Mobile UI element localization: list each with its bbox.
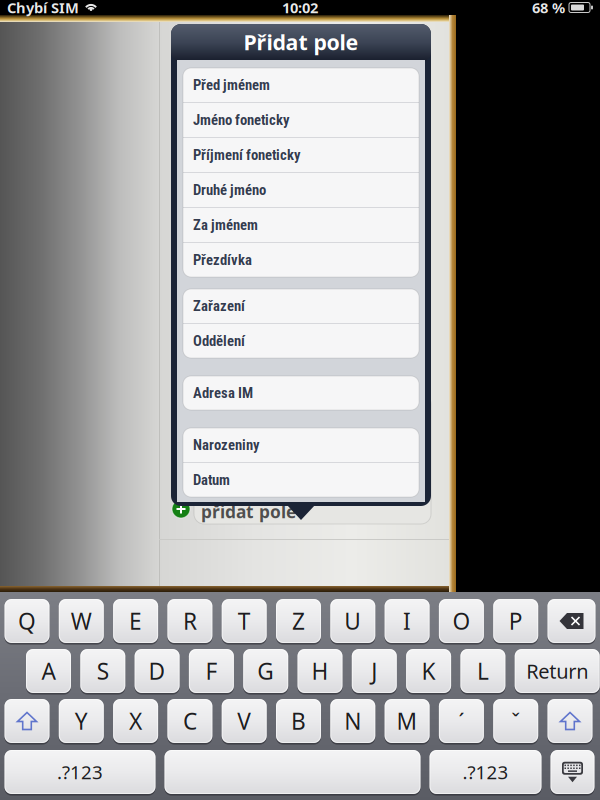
staticText: I: [403, 606, 411, 636]
button[interactable]: M: [385, 699, 430, 743]
button[interactable]: Oddělení: [183, 324, 419, 358]
staticText: Q: [18, 606, 36, 636]
staticText: N: [344, 706, 361, 736]
staticText: G: [257, 656, 274, 686]
button[interactable]: N: [330, 699, 375, 743]
button[interactable]: Zařazení: [183, 289, 419, 323]
button[interactable]: [164, 750, 420, 794]
button[interactable]: Datum: [183, 463, 419, 497]
button[interactable]: U: [330, 599, 375, 643]
button[interactable]: F: [189, 649, 234, 693]
button[interactable]: S: [80, 649, 125, 693]
button[interactable]: I: [385, 599, 430, 643]
staticText: Za jménem: [193, 216, 258, 234]
button[interactable]: W: [59, 599, 104, 643]
button[interactable]: Příjmení foneticky: [183, 138, 419, 172]
staticText: O: [452, 606, 470, 636]
button[interactable]: Return: [515, 649, 600, 693]
button[interactable]: Před jménem: [183, 68, 419, 102]
staticText: H: [311, 656, 328, 686]
button[interactable]: ˇ: [493, 699, 538, 743]
staticText: Datum: [193, 471, 230, 489]
staticText: M: [397, 706, 418, 736]
button[interactable]: P: [493, 599, 538, 643]
staticText: F: [205, 656, 217, 686]
button[interactable]: Hide keyboard: [550, 750, 594, 794]
button[interactable]: Narozeniny: [183, 428, 419, 462]
button[interactable]: O: [439, 599, 484, 643]
staticText: 68 %: [532, 0, 565, 17]
staticText: Jméno foneticky: [193, 111, 290, 129]
staticText: .?123: [57, 760, 103, 784]
button[interactable]: J: [352, 649, 397, 693]
staticText: U: [344, 606, 361, 636]
staticText: ˇ: [511, 707, 520, 735]
button[interactable]: Z: [276, 599, 321, 643]
staticText: J: [371, 656, 377, 686]
button[interactable]: Za jménem: [183, 208, 419, 242]
staticText: Narozeniny: [193, 436, 260, 454]
staticText: Return: [526, 658, 588, 684]
button[interactable]: E: [113, 599, 158, 643]
staticText: [289, 757, 295, 787]
button[interactable]: .?123: [429, 750, 541, 794]
button[interactable]: Druhé jméno: [183, 173, 419, 207]
staticText: Druhé jméno: [193, 181, 266, 199]
button[interactable]: A: [26, 649, 71, 693]
staticText: Před jménem: [193, 76, 270, 94]
staticText: ´: [458, 707, 464, 735]
button[interactable]: ´: [439, 699, 484, 743]
button[interactable]: K: [406, 649, 451, 693]
staticText: L: [477, 656, 489, 686]
staticText: D: [149, 656, 166, 686]
staticText: Y: [75, 706, 88, 736]
staticText: X: [129, 706, 142, 736]
button[interactable]: Shift: [547, 699, 592, 743]
staticText: V: [237, 706, 251, 736]
staticText: Přezdívka: [193, 251, 252, 269]
button[interactable]: V: [222, 699, 267, 743]
staticText: R: [183, 606, 197, 636]
button[interactable]: Q: [4, 599, 49, 643]
button[interactable]: X: [113, 699, 158, 743]
staticText: P: [509, 606, 523, 636]
button[interactable]: Y: [59, 699, 104, 743]
button[interactable]: T: [222, 599, 267, 643]
staticText: Chybí SIM: [7, 0, 79, 17]
button[interactable]: Přezdívka: [183, 243, 419, 277]
button[interactable]: .?123: [4, 750, 155, 794]
staticText: Adresa IM: [193, 384, 253, 402]
button[interactable]: Backspace: [547, 599, 595, 643]
staticText: Příjmení foneticky: [193, 146, 301, 164]
staticText: C: [183, 706, 197, 736]
staticText: Oddělení: [193, 332, 245, 350]
staticText: Zařazení: [193, 297, 245, 315]
staticText: E: [129, 606, 142, 636]
staticText: .?123: [462, 760, 508, 784]
staticText: S: [97, 656, 109, 686]
staticText: A: [41, 656, 55, 686]
button[interactable]: C: [167, 699, 212, 743]
button[interactable]: Shift: [4, 699, 49, 743]
button[interactable]: Jméno foneticky: [183, 103, 419, 137]
staticText: Z: [292, 606, 305, 636]
button[interactable]: D: [135, 649, 180, 693]
staticText: B: [291, 706, 306, 736]
button[interactable]: L: [460, 649, 505, 693]
button[interactable]: G: [243, 649, 288, 693]
staticText: přidat pole: [201, 500, 296, 523]
staticText: Přidat pole: [243, 28, 358, 56]
staticText: W: [71, 606, 92, 636]
button[interactable]: R: [167, 599, 212, 643]
staticText: K: [422, 656, 436, 686]
button[interactable]: B: [276, 699, 321, 743]
button[interactable]: H: [297, 649, 342, 693]
staticText: T: [238, 606, 251, 636]
staticText: 10:02: [282, 0, 318, 17]
button[interactable]: Adresa IM: [183, 376, 419, 410]
